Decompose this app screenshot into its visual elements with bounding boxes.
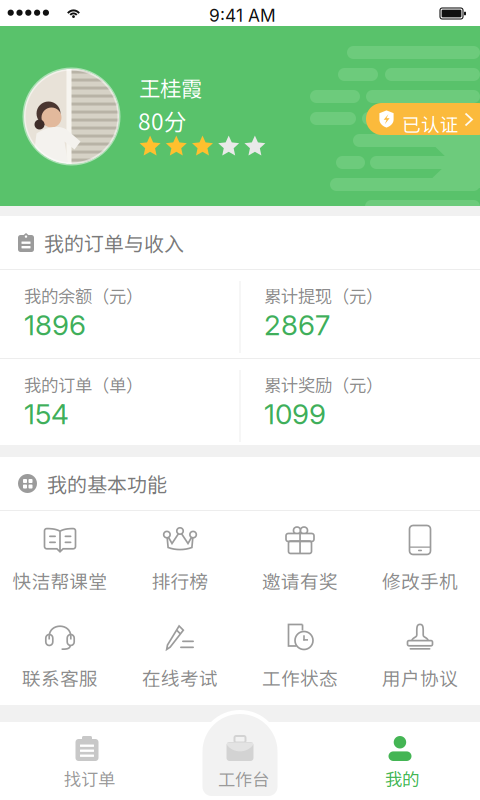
staticText: 累计提现（元）	[264, 283, 383, 308]
staticText: 9:41 AM	[209, 5, 276, 26]
staticText: 排行榜	[151, 567, 208, 594]
staticText: 我的基本功能	[47, 469, 167, 498]
button[interactable]: 累计提现（元）	[240, 270, 480, 357]
button[interactable]: 累计奖励（元）	[240, 359, 480, 446]
button[interactable]: 联系客服	[0, 608, 120, 705]
button[interactable]: 已认证	[366, 103, 480, 135]
staticText: 快洁帮课堂	[12, 567, 107, 594]
button[interactable]: 工作台	[199, 710, 281, 800]
staticText: 2867	[264, 308, 330, 342]
staticText: 累计奖励（元）	[264, 372, 383, 397]
staticText: 工作状态	[262, 664, 338, 691]
staticText: 154	[24, 397, 69, 431]
staticText: 已认证	[402, 110, 459, 137]
staticText: 工作台	[218, 766, 269, 791]
staticText: 联系客服	[22, 664, 98, 691]
button[interactable]: 排行榜	[120, 511, 240, 608]
staticText: 在线考试	[142, 664, 218, 691]
staticText: 找订单	[64, 766, 115, 791]
button[interactable]: 邀请有奖	[240, 511, 360, 608]
staticText: 1896	[24, 308, 86, 342]
button[interactable]: 修改手机	[360, 511, 480, 608]
button[interactable]: 我的订单（单）	[0, 359, 240, 446]
staticText: 我的	[385, 766, 419, 791]
staticText: 80分	[138, 104, 187, 137]
staticText: 王桂霞	[139, 72, 202, 103]
staticText: 我的订单（单）	[24, 372, 143, 397]
button[interactable]: 工作状态	[240, 608, 360, 705]
button[interactable]: 用户协议	[360, 608, 480, 705]
button[interactable]: 快洁帮课堂	[0, 511, 120, 608]
staticText: 邀请有奖	[262, 567, 338, 594]
staticText: 1099	[264, 397, 326, 431]
button[interactable]: 我的余额（元）	[0, 270, 240, 357]
staticText: 我的订单与收入	[44, 228, 184, 257]
staticText: 用户协议	[382, 664, 458, 691]
staticText: 我的余额（元）	[24, 283, 143, 308]
staticText: 修改手机	[382, 567, 458, 594]
button[interactable]: 找订单	[0, 722, 160, 800]
button[interactable]: 在线考试	[120, 608, 240, 705]
button[interactable]: 我的	[320, 722, 480, 800]
